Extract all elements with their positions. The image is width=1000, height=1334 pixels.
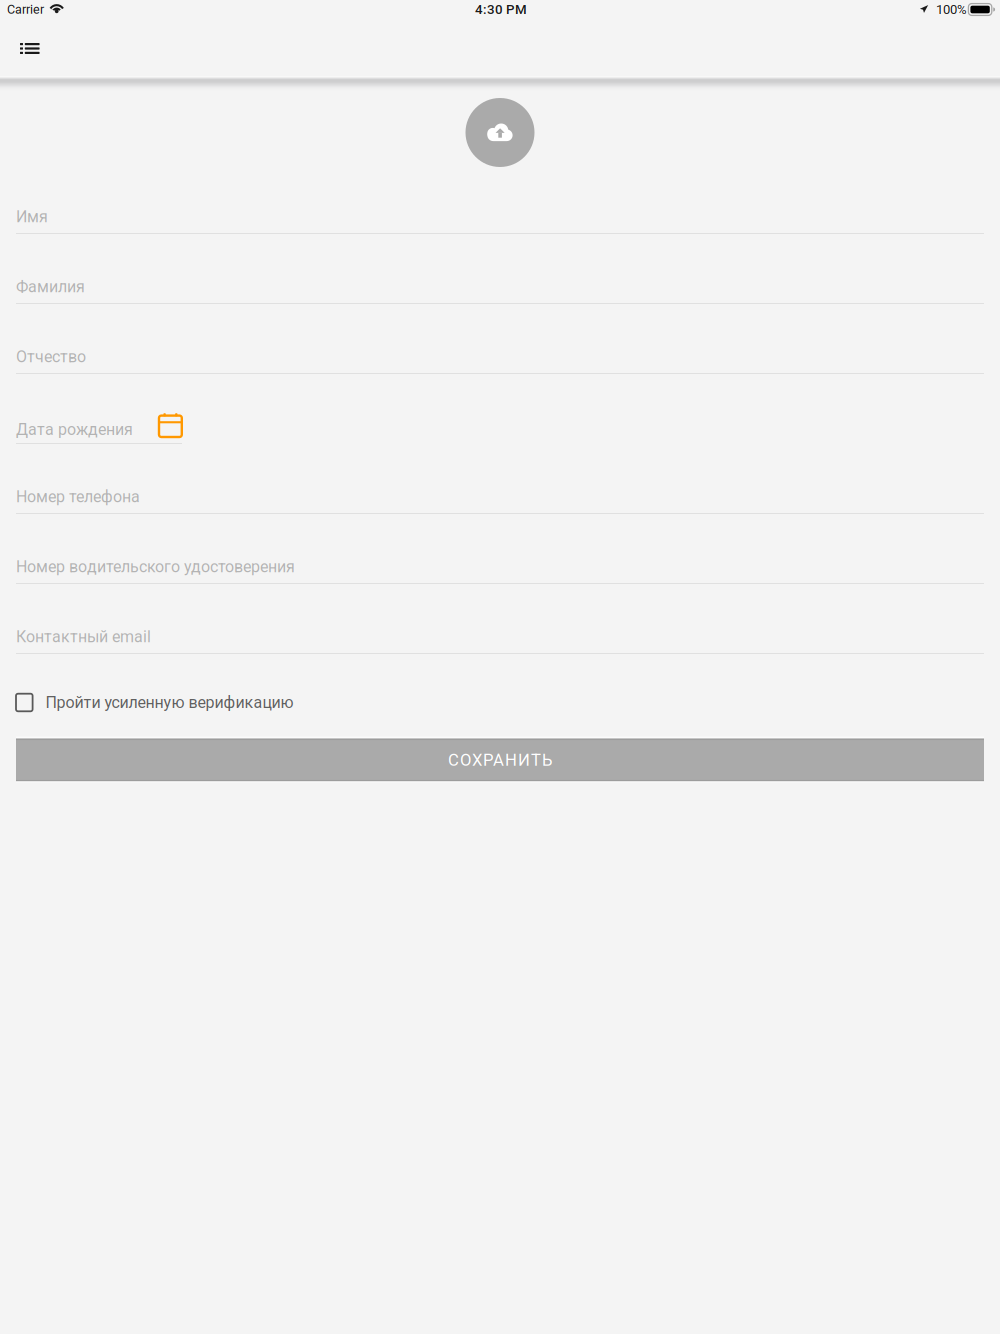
button[interactable]: Номер телефона	[16, 478, 984, 548]
staticText: СОХРАНИТЬ	[448, 750, 552, 770]
staticText: Фамилия	[16, 277, 85, 296]
staticText: Номер телефона	[16, 487, 140, 506]
staticText: 100%	[936, 2, 967, 17]
staticText: Carrier	[7, 2, 44, 17]
staticText: Отчество	[16, 347, 86, 366]
button[interactable]: Пройти усиленную верификацию	[16, 686, 984, 718]
button[interactable]: Контактный email	[16, 618, 984, 688]
staticText: 4:30 PM	[475, 2, 527, 17]
button[interactable]: Upload photo	[465, 98, 534, 167]
button[interactable]: Отчество	[16, 338, 984, 408]
staticText: Имя	[16, 207, 48, 226]
button[interactable]: Имя	[16, 198, 984, 268]
button[interactable]: Фамилия	[16, 268, 984, 338]
staticText: Пройти усиленную верификацию	[46, 693, 294, 712]
staticText: Контактный email	[16, 627, 151, 646]
button[interactable]: Menu	[10, 32, 50, 65]
button[interactable]: Номер водительского удостоверения	[16, 548, 984, 618]
staticText: Номер водительского удостоверения	[16, 557, 295, 576]
button[interactable]: Дата рождения	[16, 408, 984, 478]
button[interactable]: СОХРАНИТЬ	[16, 738, 984, 781]
staticText: Дата рождения	[16, 420, 133, 439]
